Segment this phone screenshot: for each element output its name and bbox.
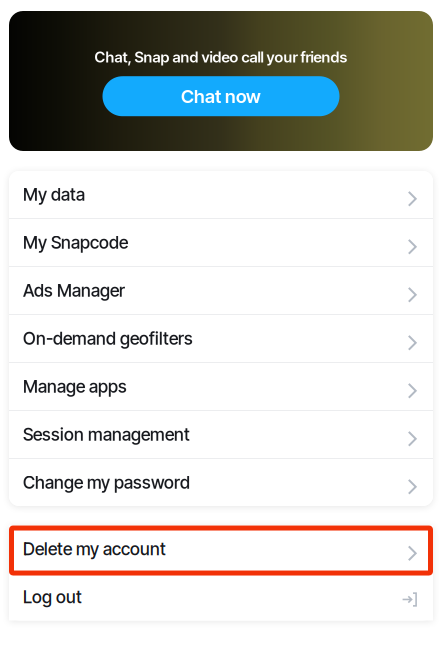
button[interactable]: On-demand geofilters	[9, 315, 433, 362]
button[interactable]: Chat now	[102, 76, 339, 116]
staticText: My data	[23, 184, 85, 205]
staticText: Session management	[23, 424, 190, 445]
button[interactable]: Manage apps	[9, 363, 433, 410]
button[interactable]: My data	[9, 171, 433, 218]
button[interactable]: Change my password	[9, 459, 433, 506]
button[interactable]: My Snapcode	[9, 219, 433, 266]
button[interactable]: Session management	[9, 411, 433, 458]
button[interactable]: Ads Manager	[9, 267, 433, 314]
button[interactable]: Delete my account	[9, 525, 433, 572]
staticText: Log out	[23, 586, 82, 607]
staticText: Ads Manager	[23, 280, 125, 301]
staticText: My Snapcode	[23, 232, 128, 253]
staticText: Change my password	[23, 472, 190, 493]
staticText: Delete my account	[23, 538, 166, 559]
staticText: Chat now	[181, 85, 261, 107]
button[interactable]: Log out	[9, 573, 433, 620]
staticText: On-demand geofilters	[23, 328, 193, 349]
staticText: Chat, Snap and video call your friends	[94, 48, 347, 66]
staticText: Manage apps	[23, 376, 127, 397]
